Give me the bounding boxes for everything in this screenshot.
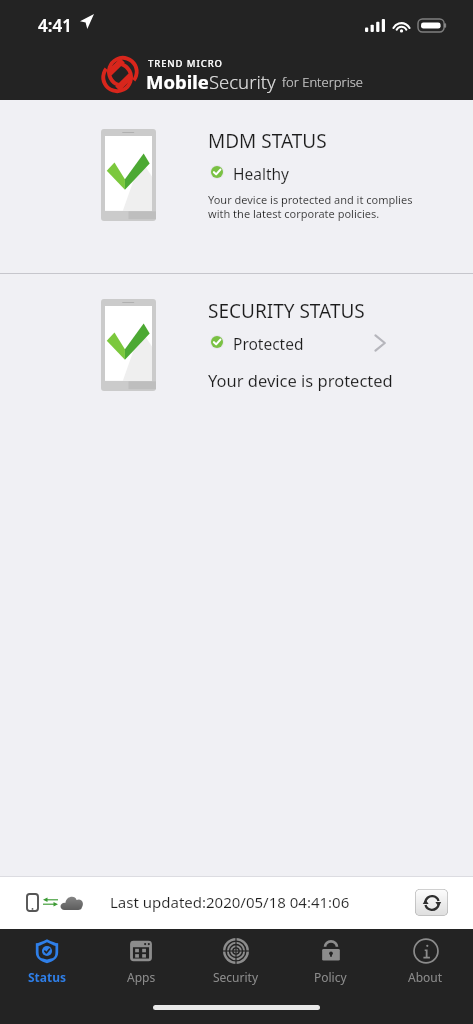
staticText: Security [213,969,259,985]
staticText: 4:41 [38,14,72,37]
staticText: About [408,969,443,985]
button[interactable]: Apps [94,929,188,991]
staticText: Your device is protected and it complies… [208,192,413,222]
button[interactable]: SECURITY STATUS [0,274,473,404]
staticText: Security [209,69,276,94]
button[interactable]: Policy [283,929,378,991]
staticText: Mobile [146,69,209,94]
button[interactable]: Refresh [415,889,448,916]
staticText: Protected [233,333,304,354]
button[interactable]: About [378,929,473,991]
staticText: TREND MICRO [148,57,223,70]
staticText: for Enterprise [282,73,364,91]
staticText: Last updated:2020/05/18 04:41:06 [110,892,350,912]
button[interactable]: MDM STATUS [0,100,473,273]
staticText: MDM STATUS [208,128,327,154]
staticText: Healthy [233,163,290,184]
button[interactable]: Security [188,929,283,991]
button[interactable]: Status [0,929,94,991]
staticText: Status [28,969,67,985]
staticText: Apps [127,969,156,985]
staticText: Your device is protected [208,369,393,391]
staticText: Policy [314,969,347,985]
staticText: SECURITY STATUS [208,298,365,324]
